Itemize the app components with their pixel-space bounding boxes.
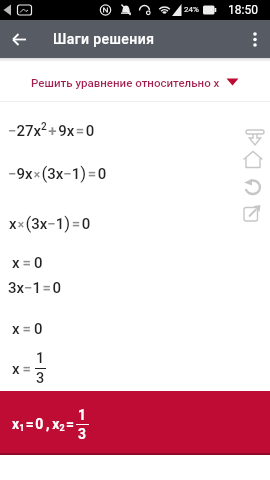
staticText: x = 0 [12,320,43,338]
staticText: Шаги решения [53,31,155,47]
staticText: 3 [78,426,87,442]
staticText: −27x2 + 9x = 0 [8,121,95,140]
staticText: 3 [36,370,45,387]
staticText: 3x−1 = 0 [8,279,62,297]
staticText: 1 [78,407,87,423]
button[interactable] [243,150,263,170]
button[interactable] [245,127,265,147]
button[interactable] [243,177,263,197]
button[interactable]: Решить уравнение относительно x [0,70,270,94]
staticText: x = [12,360,35,378]
staticText: 1 [36,350,45,367]
button[interactable]: x1 = 0 , x2 = [0,391,270,455]
staticText: 18:50 [228,3,258,17]
staticText: x × (3x−1) = 0 [9,213,91,233]
staticText: 24% [184,5,199,14]
button[interactable] [243,203,263,223]
staticText: −9x × (3x−1) = 0 [8,163,107,183]
button[interactable] [8,31,32,55]
staticText: x1 = 0 , x2 = [12,416,76,433]
button[interactable] [246,31,264,49]
staticText: x = 0 [12,254,43,272]
staticText: Решить уравнение относительно x [31,76,220,89]
